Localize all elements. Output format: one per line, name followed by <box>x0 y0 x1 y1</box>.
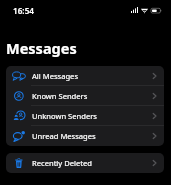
staticText: Recently Deleted <box>32 158 92 168</box>
staticText: All Messages <box>32 71 79 81</box>
button[interactable]: Known Senders <box>6 86 164 106</box>
button[interactable]: All Messages <box>6 66 164 86</box>
button[interactable]: Unknown Senders <box>6 106 164 126</box>
button[interactable]: Recently Deleted <box>6 153 164 173</box>
button[interactable]: Unread Messages <box>6 126 164 146</box>
staticText: Unknown Senders <box>32 111 97 121</box>
staticText: 16:54 <box>13 5 34 16</box>
staticText: Known Senders <box>32 91 88 101</box>
staticText: Messages <box>6 38 77 58</box>
staticText: Unread Messages <box>32 131 96 141</box>
